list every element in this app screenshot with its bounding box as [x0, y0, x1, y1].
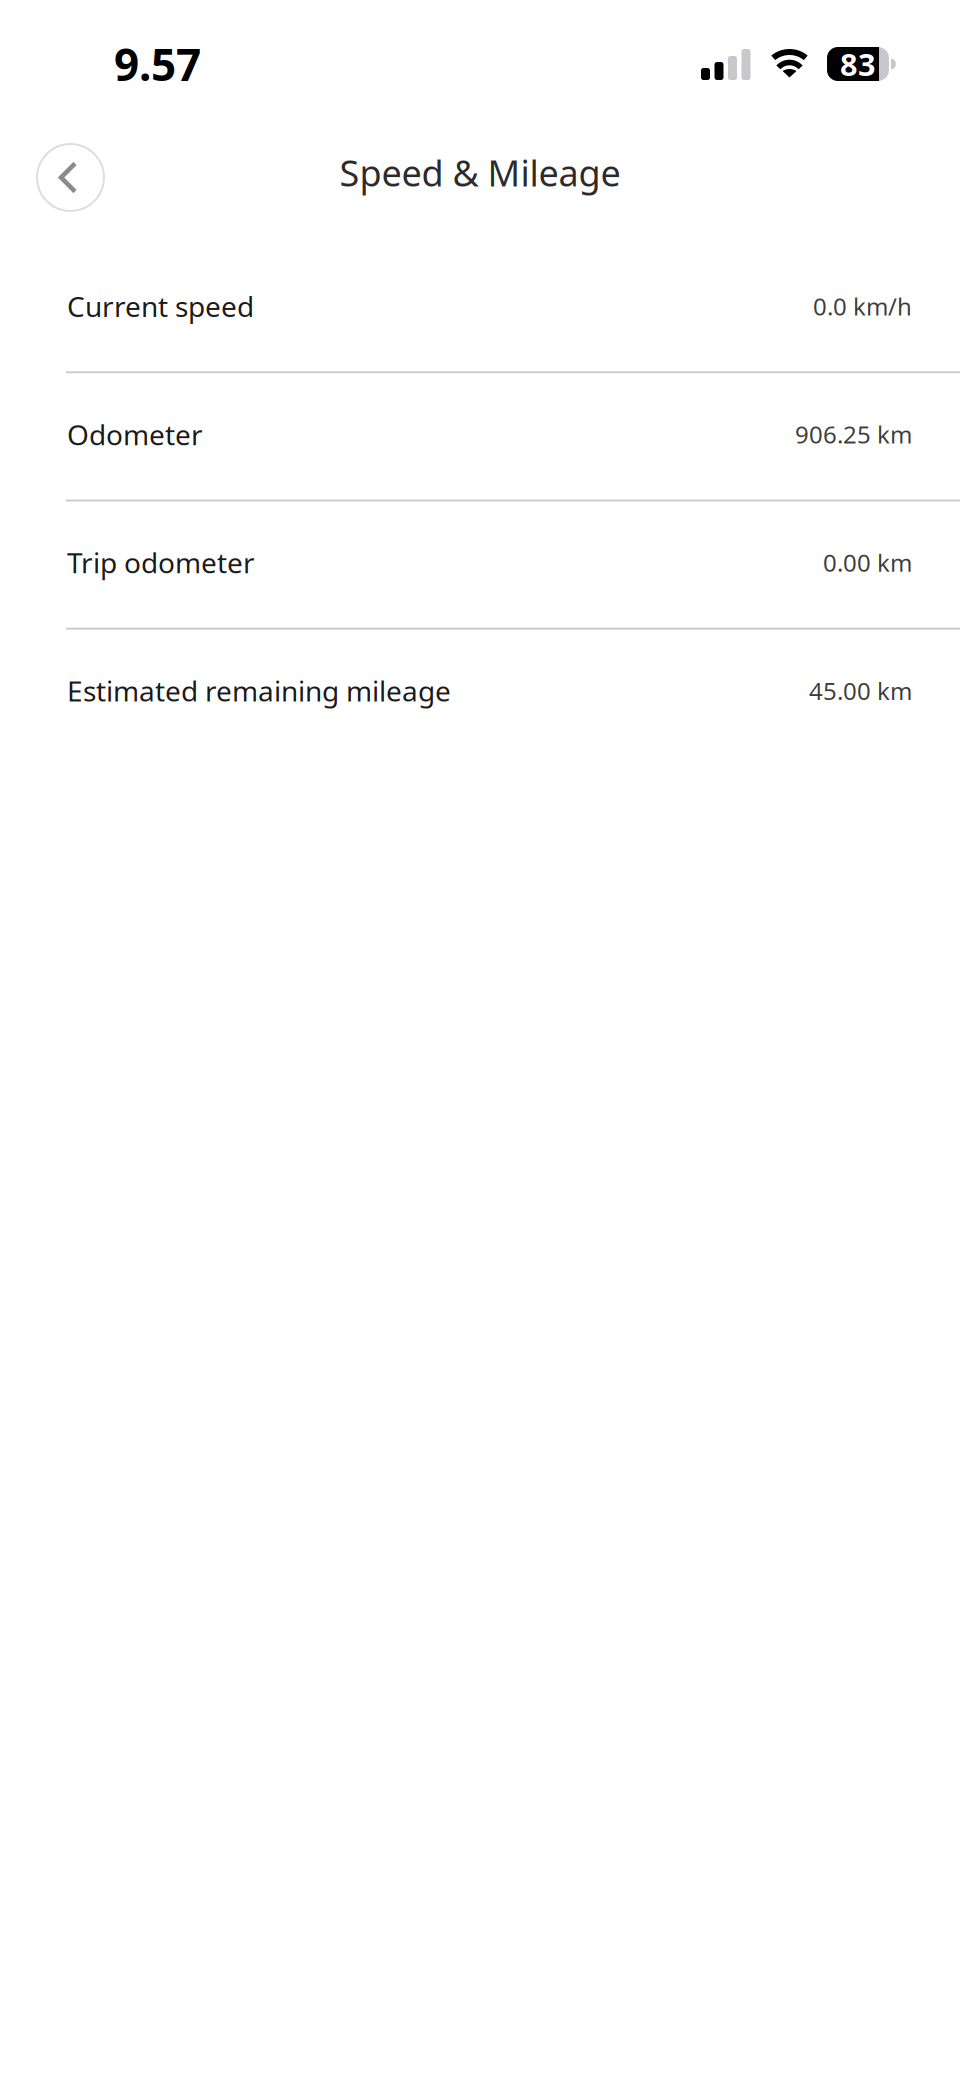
staticText: 83: [840, 44, 876, 84]
staticText: 0.0 km/h: [813, 290, 912, 322]
staticText: Current speed: [67, 287, 254, 325]
staticText: 906.25 km: [795, 418, 912, 450]
staticText: Trip odometer: [67, 544, 255, 581]
staticText: 45.00 km: [809, 675, 912, 707]
staticText: Estimated remaining mileage: [67, 672, 451, 709]
button[interactable]: Back: [37, 143, 104, 211]
staticText: Odometer: [67, 416, 203, 453]
staticText: 9.57: [114, 35, 201, 93]
staticText: 0.00 km: [823, 547, 912, 578]
staticText: Speed & Mileage: [339, 149, 620, 196]
